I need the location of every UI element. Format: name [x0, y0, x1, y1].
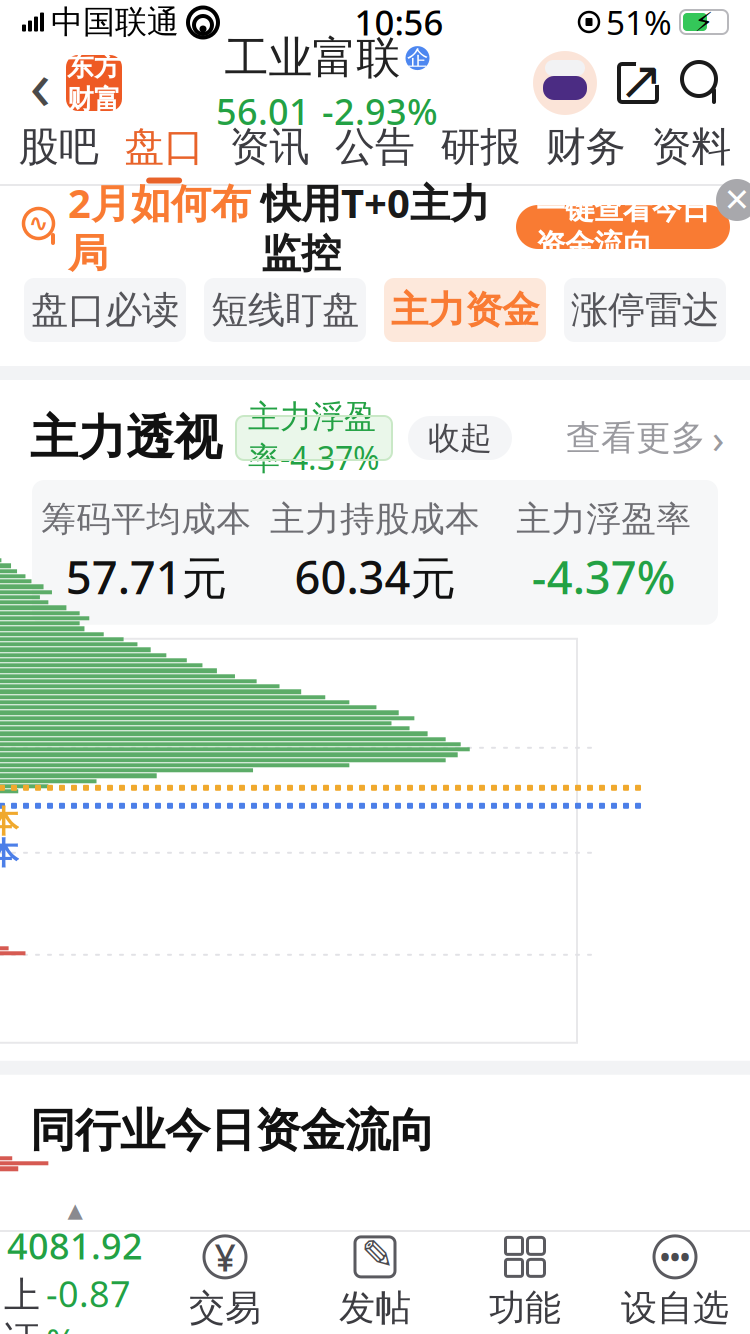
staticText: 功能	[489, 1286, 561, 1330]
staticText: 盘口	[124, 122, 204, 171]
button[interactable]: 查看更多	[566, 413, 724, 463]
staticText: 资料	[651, 122, 731, 171]
button[interactable]: 东方财富	[66, 55, 122, 111]
staticText: ∿	[28, 209, 48, 237]
staticText: 主力浮盈率-4.37%	[248, 397, 380, 479]
staticText: 东方	[67, 50, 121, 83]
staticText: 筹码成本	[0, 835, 19, 872]
staticText: 公告	[335, 122, 415, 171]
staticText: •••	[660, 1239, 690, 1275]
staticText: 主力成本	[0, 803, 19, 841]
staticText: 设自选	[621, 1286, 729, 1330]
staticText: 10:56	[354, 0, 443, 45]
staticText: ✎	[361, 1232, 395, 1278]
staticText: 研报	[440, 122, 520, 171]
button[interactable]: 涨停雷达	[564, 278, 726, 342]
button[interactable]: 资料	[639, 122, 744, 184]
staticText: -0.87%	[46, 1269, 131, 1334]
staticText: ‹	[29, 37, 50, 129]
staticText: 查看更多	[566, 417, 706, 459]
staticText: 快用T+0主力监控	[261, 176, 490, 278]
staticText: 56.01	[216, 87, 310, 135]
button[interactable]: 搜索	[674, 54, 732, 112]
staticText: ✕	[723, 182, 750, 218]
staticText: 60.34元	[294, 547, 455, 607]
staticText: -2.93%	[322, 87, 438, 135]
staticText: 上证	[4, 1273, 40, 1334]
staticText: 收起	[428, 418, 492, 458]
staticText: -4.37%	[532, 547, 676, 607]
button[interactable]: 主力资金	[384, 278, 546, 342]
staticText: 盘口必读	[31, 287, 179, 333]
staticText: 筹码平均成本	[41, 498, 251, 541]
staticText: 财富	[67, 83, 121, 116]
button[interactable]: 公告	[322, 122, 428, 184]
staticText: 财务	[546, 122, 626, 171]
button[interactable]: 一键查看今日资金流向	[516, 205, 730, 249]
button[interactable]: ▲	[0, 1230, 150, 1334]
staticText: ›	[712, 411, 724, 464]
button[interactable]: ✎	[300, 1230, 450, 1334]
button[interactable]: 智能助手	[532, 50, 598, 116]
button[interactable]: •••	[600, 1230, 750, 1334]
button[interactable]: 收起	[408, 416, 512, 460]
staticText: 主力资金	[391, 287, 539, 333]
staticText: 57.71元	[66, 547, 227, 607]
staticText: 2月如何布局	[68, 176, 251, 278]
button[interactable]: 盘口必读	[24, 278, 186, 342]
staticText: 同行业今日资金流向	[30, 1103, 435, 1158]
staticText: ¥	[214, 1232, 235, 1282]
staticText: 主力透视	[30, 408, 222, 467]
staticText: 交易	[189, 1286, 261, 1330]
staticText: 主力浮盈率	[516, 498, 691, 541]
staticText: 股吧	[19, 122, 99, 171]
button[interactable]: 资讯	[217, 122, 322, 184]
staticText: 短线盯盘	[211, 287, 359, 333]
staticText: 4081.92	[7, 1222, 143, 1269]
staticText: 涨停雷达	[571, 287, 719, 333]
button[interactable]: ¥	[150, 1230, 300, 1334]
button[interactable]: 关闭	[716, 179, 750, 221]
button[interactable]: 财务	[533, 122, 638, 184]
button[interactable]: 研报	[428, 122, 533, 184]
staticText: 中国联通	[51, 2, 179, 42]
staticText: ⚡︎	[694, 7, 713, 37]
staticText: 工业富联	[224, 31, 400, 85]
staticText: ▲	[67, 1199, 82, 1222]
button[interactable]: 盘口	[111, 122, 217, 184]
staticText: 一键查看今日资金流向	[536, 191, 710, 263]
staticText: 发帖	[339, 1286, 411, 1330]
staticText: ↗	[618, 50, 663, 111]
button[interactable]: 返回	[18, 48, 62, 118]
staticText: 企	[407, 45, 428, 71]
button[interactable]: 功能	[450, 1230, 600, 1334]
staticText: 资讯	[230, 122, 310, 171]
button[interactable]: 短线盯盘	[204, 278, 366, 342]
staticText: 主力持股成本	[270, 498, 480, 541]
staticText: 51%	[606, 0, 672, 44]
button[interactable]: 股吧	[6, 122, 111, 184]
button[interactable]: 分享	[608, 53, 668, 113]
